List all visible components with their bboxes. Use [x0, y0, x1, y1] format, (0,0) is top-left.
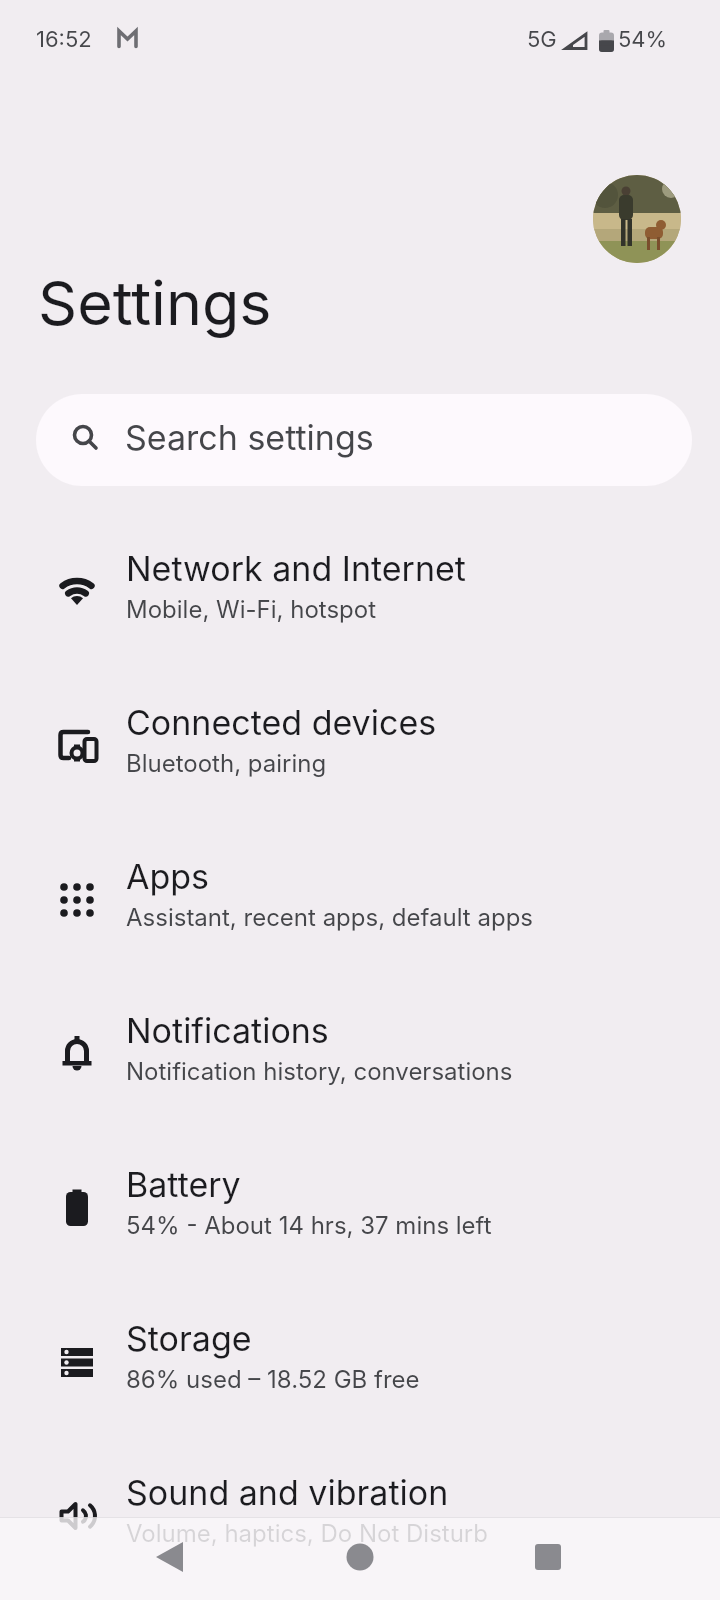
button[interactable]: Network and Internet [0, 515, 720, 669]
button[interactable] [593, 175, 681, 263]
button[interactable]: Battery [0, 1131, 720, 1285]
button[interactable]: Storage [0, 1285, 720, 1439]
button[interactable]: Apps [0, 823, 720, 977]
staticText: Volume, haptics, Do Not Disturb [126, 1519, 488, 1548]
staticText: Sound and vibration [126, 1472, 449, 1513]
staticText: 54% - About 14 hrs, 37 mins left [126, 1211, 492, 1240]
staticText: Notifications [126, 1010, 329, 1051]
staticText: 5G [527, 26, 557, 53]
staticText: Storage [126, 1318, 252, 1359]
staticText: Notification history, conversations [126, 1057, 513, 1086]
staticText: Network and Internet [126, 548, 466, 589]
staticText: 54% [618, 26, 668, 53]
button[interactable] [480, 1517, 720, 1600]
button[interactable]: Sound and vibration [0, 1439, 720, 1593]
button[interactable] [0, 1517, 240, 1600]
staticText: Settings [38, 266, 272, 340]
staticText: 86% used – 18.52 GB free [126, 1365, 420, 1394]
staticText: Assistant, recent apps, default apps [126, 903, 533, 932]
staticText: 16:52 [36, 26, 92, 53]
staticText: Apps [126, 856, 210, 897]
button[interactable]: Search settings [36, 394, 692, 486]
button[interactable]: Notifications [0, 977, 720, 1131]
staticText: Mobile, Wi-Fi, hotspot [126, 595, 376, 624]
staticText: Battery [126, 1164, 241, 1205]
staticText: Search settings [125, 417, 374, 458]
staticText: Bluetooth, pairing [126, 749, 327, 778]
button[interactable] [240, 1517, 480, 1600]
staticText: Connected devices [126, 702, 437, 743]
button[interactable]: Connected devices [0, 669, 720, 823]
